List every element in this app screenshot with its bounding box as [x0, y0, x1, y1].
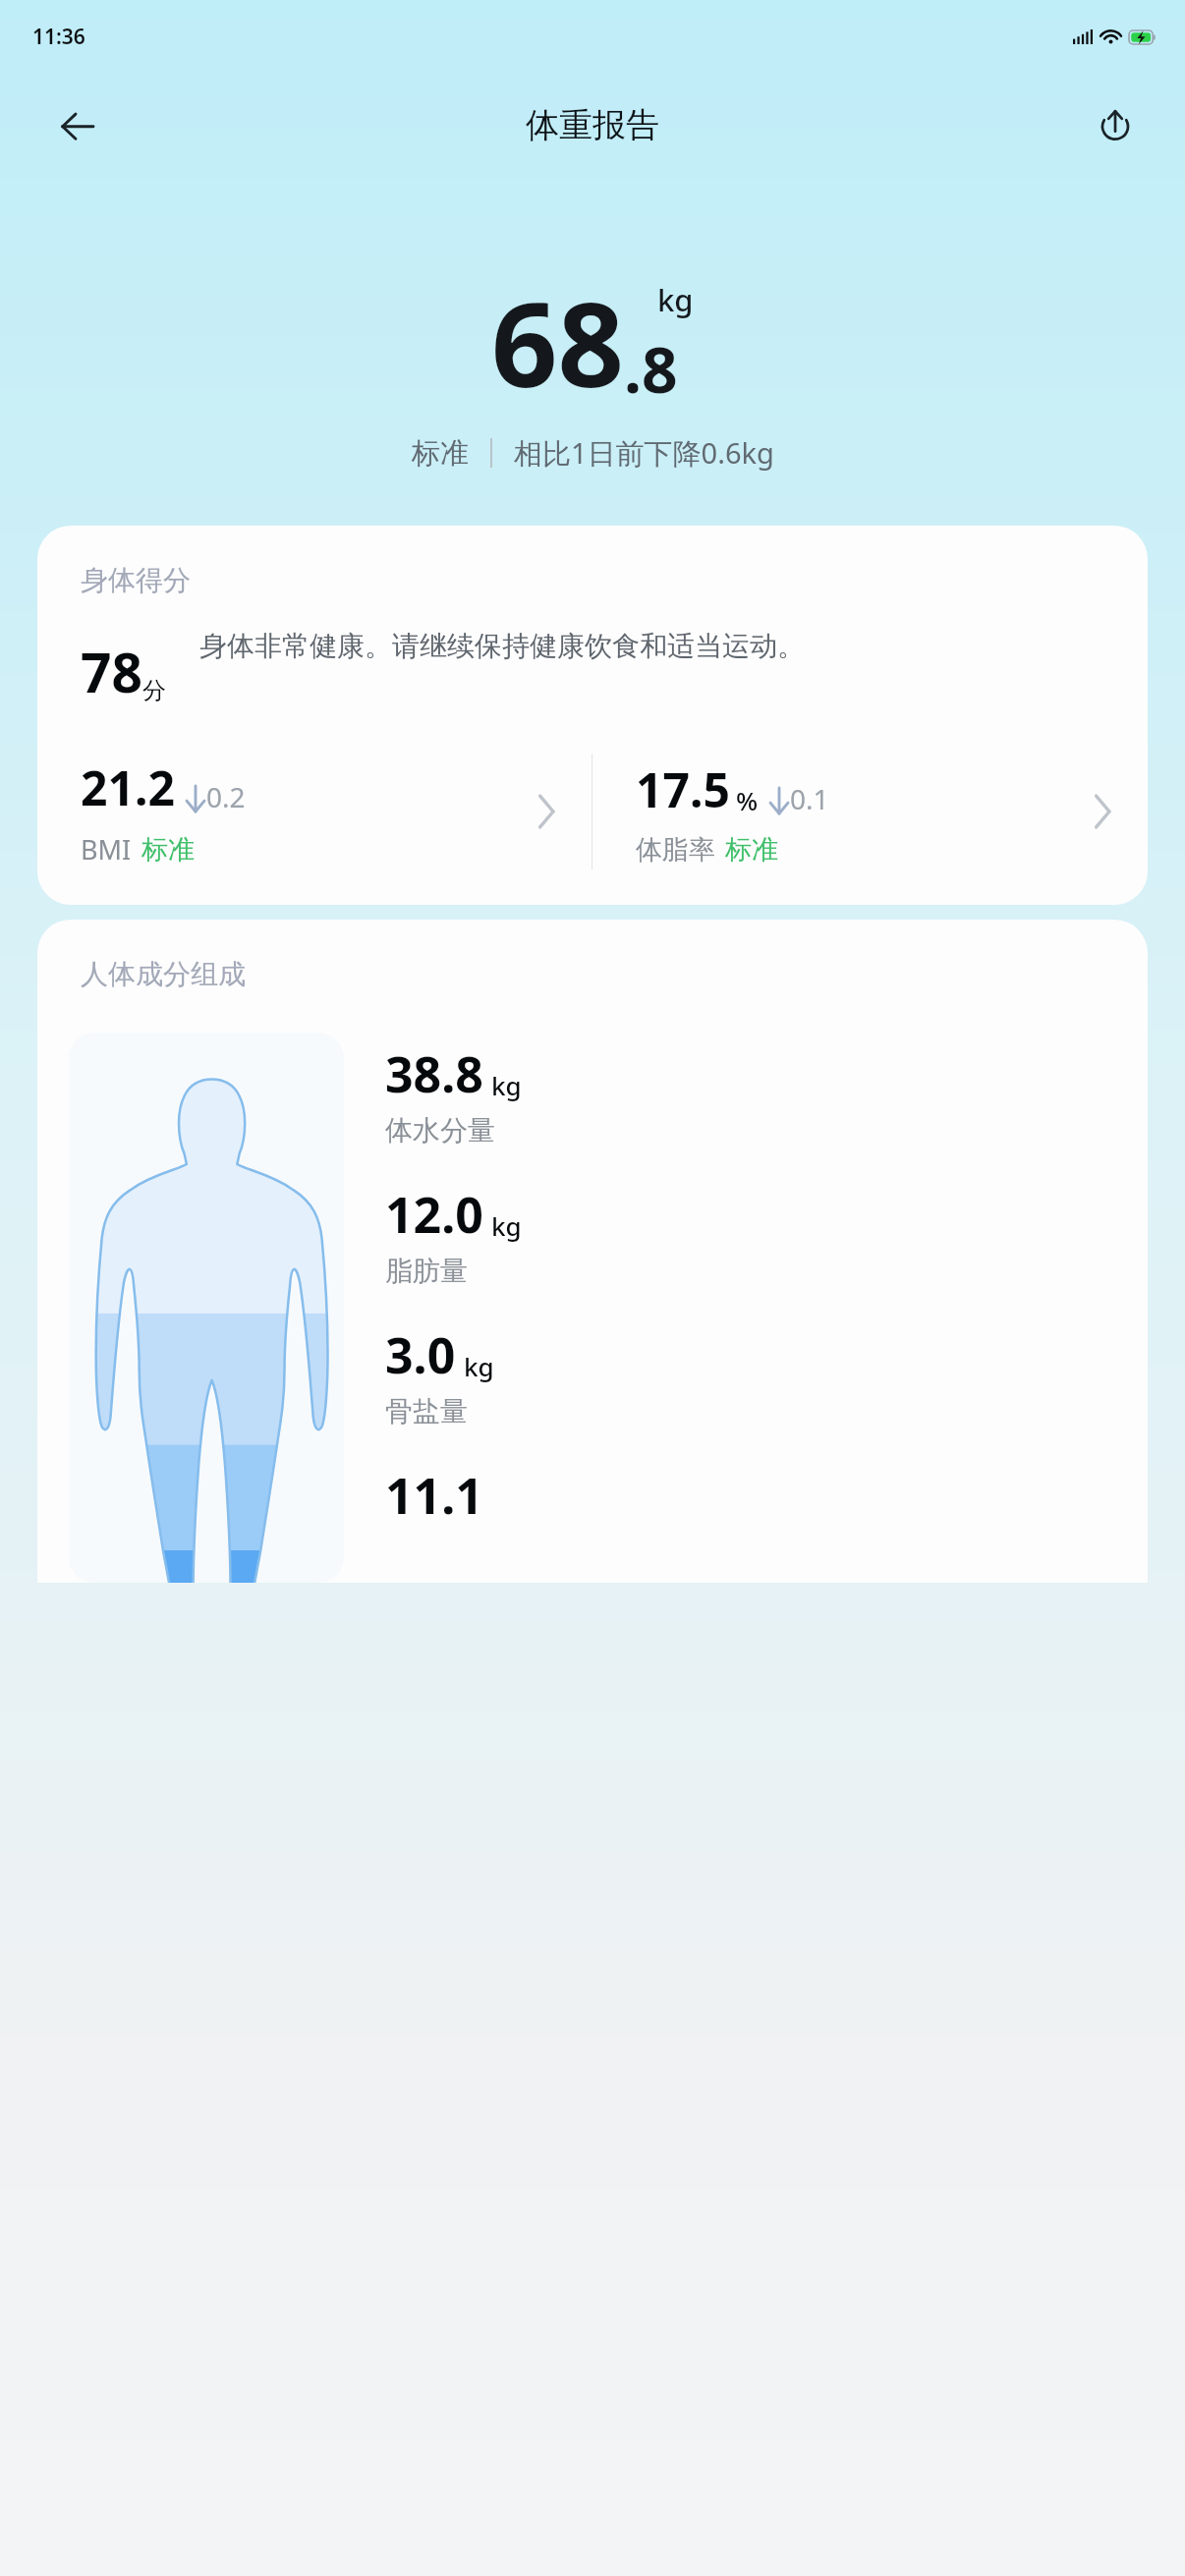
staticText: BMI: [81, 831, 132, 868]
staticText: 标准: [141, 833, 195, 867]
staticText: 骨盐量: [385, 1394, 468, 1428]
staticText: 身体非常健康。请继续保持健康饮食和适当运动。: [199, 629, 805, 663]
staticText: 标准: [412, 435, 469, 472]
staticText: kg: [491, 1068, 522, 1102]
staticText: 0.1: [790, 780, 829, 817]
staticText: 12.0: [385, 1181, 483, 1248]
staticText: 3.0: [385, 1321, 456, 1388]
staticText: kg: [657, 279, 694, 320]
button[interactable]: 21.2: [37, 748, 592, 875]
staticText: 体水分量: [385, 1113, 495, 1148]
staticText: 标准: [725, 833, 778, 867]
staticText: kg: [491, 1208, 522, 1243]
staticText: 0.2: [206, 778, 246, 815]
staticText: 脂肪量: [385, 1254, 468, 1288]
button[interactable]: Share: [1085, 95, 1146, 156]
button[interactable]: Back: [47, 95, 108, 156]
staticText: 体脂率: [636, 833, 715, 867]
staticText: 21.2: [81, 756, 175, 819]
staticText: %: [736, 783, 759, 817]
staticText: 17.5: [636, 757, 730, 821]
staticText: 人体成分组成: [81, 957, 246, 991]
staticText: 11.1: [385, 1462, 483, 1529]
button[interactable]: 17.5: [592, 748, 1148, 875]
staticText: 相比1日前下降0.6kg: [514, 433, 774, 473]
staticText: 分: [142, 676, 166, 705]
staticText: 体重报告: [526, 104, 659, 146]
staticText: 38.8: [385, 1040, 483, 1107]
staticText: 68: [491, 263, 624, 421]
staticText: 身体得分: [81, 563, 191, 597]
staticText: .8: [624, 326, 678, 412]
staticText: 78: [81, 635, 142, 708]
staticText: 11:36: [32, 23, 85, 51]
staticText: kg: [464, 1349, 494, 1383]
